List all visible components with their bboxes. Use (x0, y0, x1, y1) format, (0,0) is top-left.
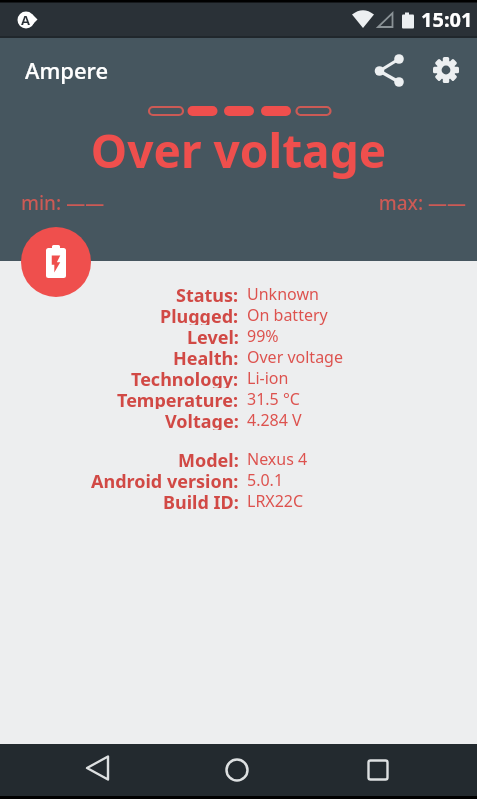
button[interactable]: Status: (0, 283, 477, 304)
staticText: A (21, 11, 31, 29)
button[interactable] (365, 46, 413, 94)
button[interactable]: Level: (0, 325, 477, 346)
staticText: Status: (176, 283, 239, 304)
button[interactable]: Technology: (0, 367, 477, 388)
staticText: Voltage: (165, 409, 239, 430)
staticText: Nexus 4 (247, 448, 308, 469)
staticText: Temperature: (117, 388, 239, 409)
button[interactable] (422, 46, 470, 94)
staticText: 99% (247, 325, 279, 346)
button[interactable] (21, 227, 91, 297)
button[interactable]: Build ID: (0, 490, 477, 511)
staticText: Over voltage (247, 346, 343, 367)
staticText: LRX22C (247, 490, 304, 511)
staticText: Model: (178, 448, 239, 469)
button[interactable]: Voltage: (0, 409, 477, 430)
staticText: Plugged: (160, 304, 239, 325)
staticText: Over voltage (0, 119, 477, 182)
button[interactable] (213, 744, 261, 792)
staticText: Build ID: (163, 490, 239, 511)
staticText: Android version: (91, 469, 239, 490)
staticText: 4.284 V (247, 409, 302, 430)
button[interactable]: Health: (0, 346, 477, 367)
staticText: Li-ion (247, 367, 289, 388)
button[interactable]: Model: (0, 448, 477, 469)
button[interactable] (354, 746, 402, 794)
staticText: 31.5 °C (247, 388, 300, 409)
staticText: 5.0.1 (247, 469, 284, 490)
button[interactable] (75, 744, 123, 792)
staticText: Technology: (131, 367, 239, 388)
staticText: max: —— (306, 190, 466, 216)
staticText: Unknown (247, 283, 319, 304)
staticText: min: —— (21, 190, 171, 216)
button[interactable]: Android version: (0, 469, 477, 490)
staticText: Health: (173, 346, 239, 367)
button[interactable]: Temperature: (0, 388, 477, 409)
staticText: On battery (247, 304, 328, 325)
button[interactable]: Plugged: (0, 304, 477, 325)
staticText: Ampere (25, 55, 225, 85)
staticText: 15:01 (421, 6, 477, 33)
staticText: Level: (187, 325, 239, 346)
